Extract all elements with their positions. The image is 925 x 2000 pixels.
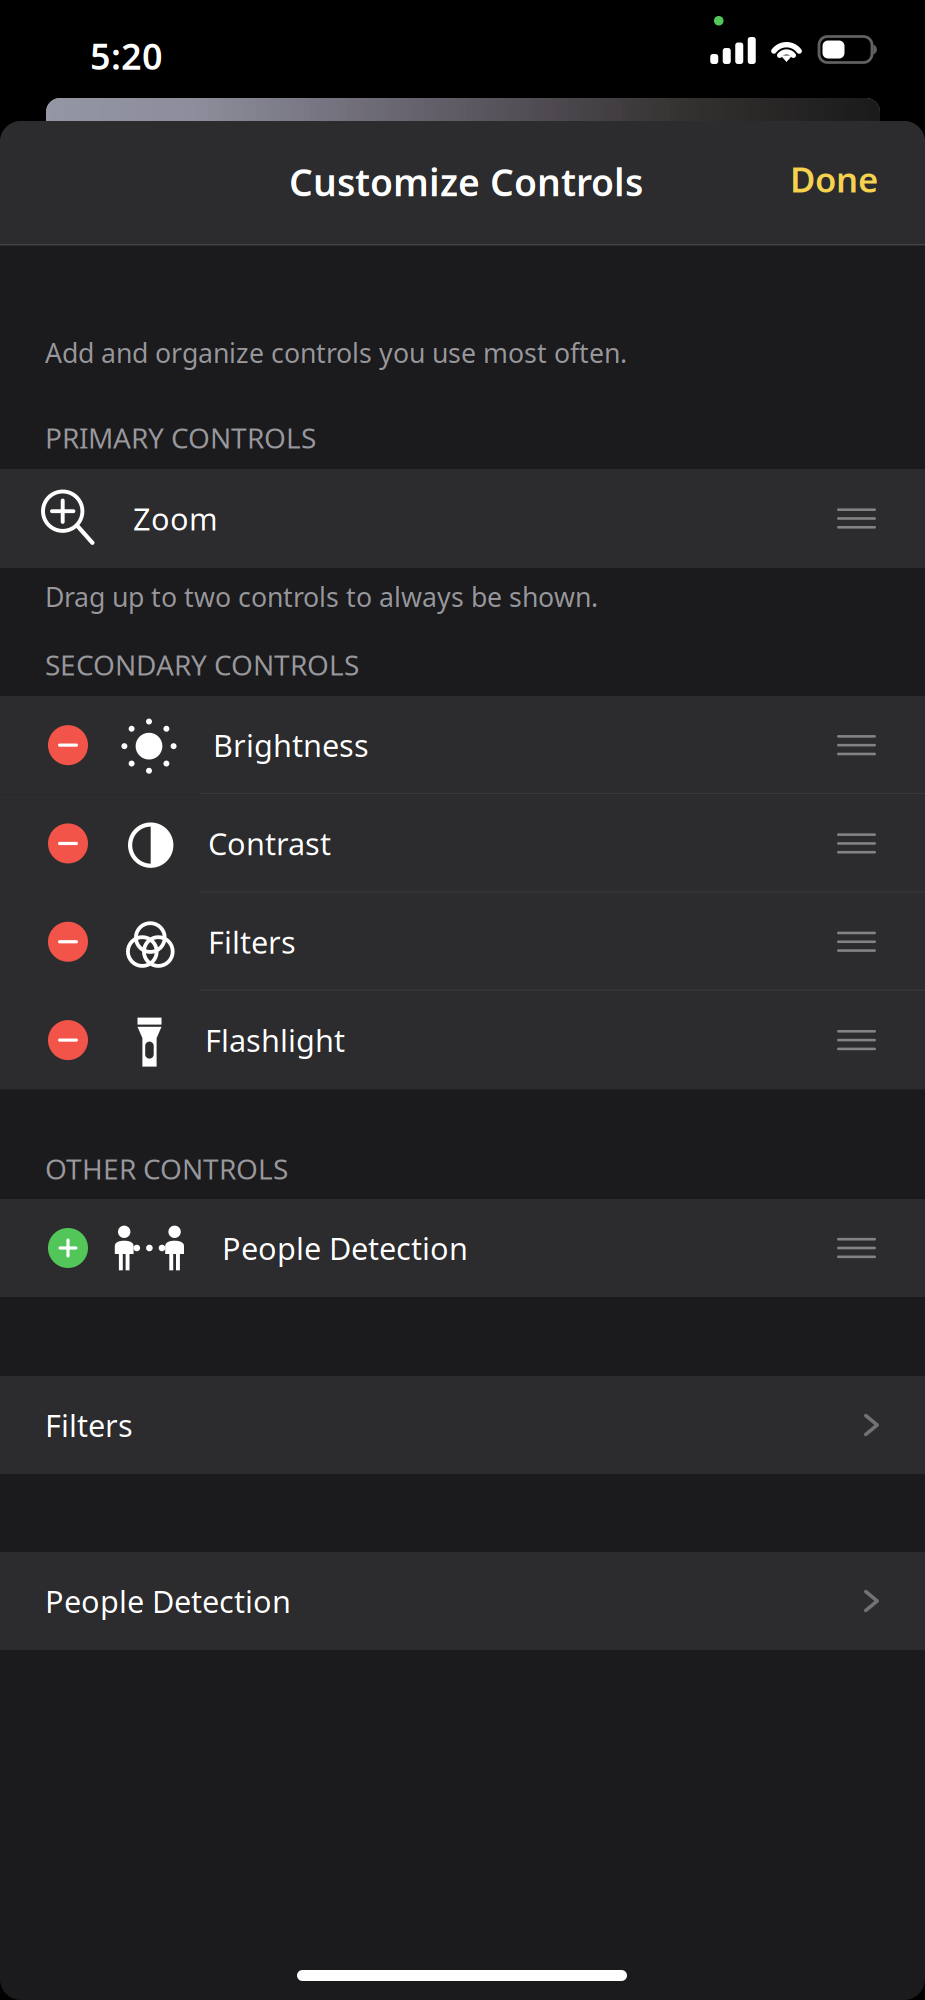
button[interactable]: Done	[766, 135, 902, 223]
staticText: Customize Controls	[289, 157, 643, 207]
staticText: PRIMARY CONTROLS	[45, 419, 316, 456]
staticText: Zoom	[133, 498, 218, 539]
button[interactable]: Contrast	[0, 794, 925, 893]
staticText: Filters	[45, 1405, 133, 1445]
staticText: Contrast	[208, 823, 331, 864]
staticText: OTHER CONTROLS	[45, 1150, 288, 1187]
staticText: Filters	[208, 921, 296, 962]
staticText: 5:20	[90, 32, 163, 80]
staticText: SECONDARY CONTROLS	[45, 646, 359, 683]
staticText: Brightness	[213, 725, 369, 765]
staticText: People Detection	[45, 1581, 291, 1621]
button[interactable]: Filters	[0, 1376, 925, 1474]
button[interactable]: Zoom	[0, 469, 925, 568]
button[interactable]: People Detection	[0, 1552, 925, 1650]
staticText: Add and organize controls you use most o…	[45, 335, 627, 370]
button[interactable]: Brightness	[0, 696, 925, 794]
staticText: Flashlight	[205, 1020, 345, 1060]
staticText: Done	[790, 156, 878, 202]
button[interactable]: Filters	[0, 893, 925, 991]
staticText: Drag up to two controls to always be sho…	[45, 579, 598, 614]
button[interactable]: Flashlight	[0, 991, 925, 1089]
staticText: People Detection	[222, 1228, 468, 1268]
button[interactable]: People Detection	[0, 1199, 925, 1297]
